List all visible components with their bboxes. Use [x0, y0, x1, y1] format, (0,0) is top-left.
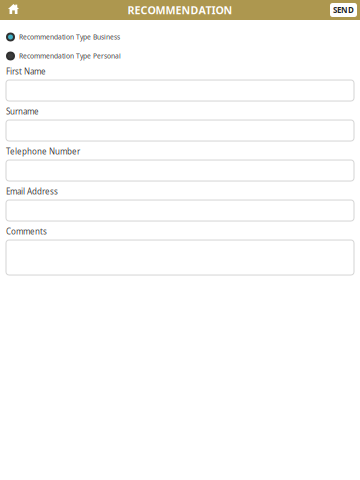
staticText: RECOMMENDATION [127, 3, 232, 17]
staticText: SEND [333, 5, 354, 15]
button[interactable]: Home [0, 0, 19, 21]
button[interactable]: Comments [6, 240, 354, 275]
button[interactable]: Recommendation Type Business [6, 31, 354, 43]
button[interactable]: First Name [6, 80, 354, 101]
staticText: Comments [6, 226, 47, 237]
button[interactable]: Surname [6, 120, 354, 141]
staticText: Recommendation Type Business [19, 33, 120, 41]
staticText: First Name [6, 66, 46, 77]
button[interactable]: Recommendation Type Personal [6, 50, 354, 62]
staticText: Email Address [6, 186, 58, 197]
staticText: Surname [6, 106, 39, 117]
staticText: Telephone Number [6, 146, 80, 157]
staticText: Recommendation Type Personal [19, 52, 121, 60]
button[interactable]: Email Address [6, 200, 354, 221]
button[interactable]: SEND [330, 3, 357, 17]
button[interactable]: Telephone Number [6, 160, 354, 181]
